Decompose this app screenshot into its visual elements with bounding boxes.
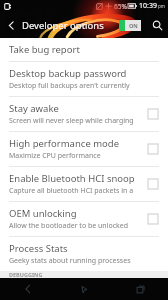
button[interactable]: Desktop backup password xyxy=(0,62,168,96)
staticText: Enable Bluetooth HCI snoop log xyxy=(9,172,141,185)
staticText: ON xyxy=(129,22,138,29)
staticText: Take bug report xyxy=(9,43,80,56)
staticText: High performance mode xyxy=(9,137,120,150)
button[interactable]: OEM unlocking xyxy=(0,202,168,236)
staticText: OEM unlocking xyxy=(9,207,77,220)
button[interactable]: Back xyxy=(0,278,56,300)
button[interactable]: Developer options on xyxy=(118,16,142,35)
button[interactable]: Home xyxy=(56,278,112,300)
button[interactable]: Process Stats xyxy=(0,237,168,271)
staticText: Maximize CPU performance xyxy=(9,151,101,161)
staticText: 10:39 xyxy=(139,1,157,11)
staticText: Stay awake xyxy=(9,102,59,115)
button[interactable]: Enable Bluetooth HCI snoop log xyxy=(0,167,168,201)
button[interactable]: Stay awake xyxy=(0,97,168,131)
button[interactable]: Stay awake checkbox xyxy=(145,106,161,122)
staticText: Capture all bluetooth HCI packets in a f… xyxy=(9,186,141,196)
staticText: pm xyxy=(158,3,165,9)
button[interactable]: Search xyxy=(146,14,168,36)
staticText: Desktop full backups aren't currently pr… xyxy=(9,81,161,91)
button[interactable]: Take bug report xyxy=(0,38,168,61)
staticText: Screen will never sleep while charging xyxy=(9,116,134,126)
staticText: Developer options xyxy=(22,19,104,32)
button[interactable]: Recent apps xyxy=(112,278,168,300)
staticText: 65% xyxy=(114,2,127,11)
button[interactable]: High performance mode xyxy=(0,132,168,166)
button[interactable]: OEM unlocking checkbox xyxy=(145,211,161,227)
staticText: Process Stats xyxy=(9,242,68,255)
staticText: Desktop backup password xyxy=(9,67,127,80)
button[interactable]: Back xyxy=(0,14,22,36)
button[interactable]: High performance mode checkbox xyxy=(145,141,161,157)
staticText: Geeky stats about running processes xyxy=(9,256,131,266)
staticText: Allow the bootloader to be unlocked xyxy=(9,221,129,231)
staticText: DEBUGGING xyxy=(9,271,43,278)
button[interactable]: Enable Bluetooth HCI snoop log checkbox xyxy=(145,176,161,192)
